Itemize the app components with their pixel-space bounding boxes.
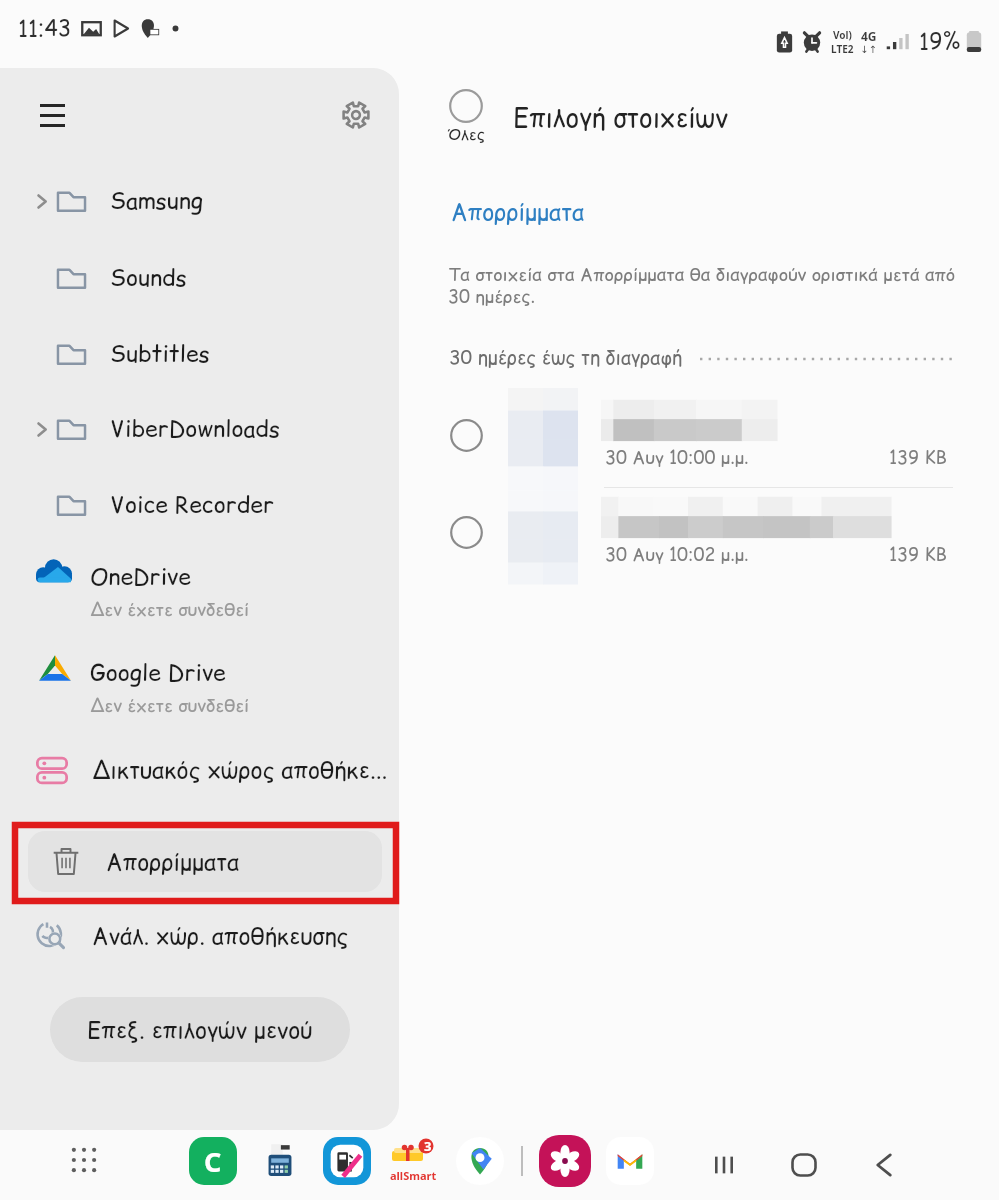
button[interactable]: Επεξ. επιλογών μενού bbox=[50, 997, 350, 1062]
button[interactable]: Maps bbox=[456, 1137, 504, 1185]
staticText: Δικτυακός χώρος αποθήκε... bbox=[92, 754, 388, 786]
staticText: 30 ημέρες έως τη διαγραφή bbox=[449, 344, 683, 371]
button[interactable]: Fuel app bbox=[323, 1137, 371, 1185]
button[interactable]: Home bbox=[778, 1139, 830, 1191]
button[interactable]: Subtitles bbox=[0, 318, 399, 390]
staticText: Απορρίμματα bbox=[451, 196, 585, 228]
button[interactable] bbox=[430, 390, 999, 486]
button[interactable]: OneDrive bbox=[0, 548, 399, 634]
button[interactable]: Απορρίμματα bbox=[28, 831, 382, 892]
staticText: 11:43 bbox=[18, 13, 72, 44]
staticText: Google Drive bbox=[90, 657, 226, 689]
button[interactable]: Δικτυακός χώρος αποθήκε... bbox=[0, 734, 399, 806]
staticText: Τα στοιχεία στα Απορρίμματα θα διαγραφού… bbox=[448, 262, 956, 287]
button[interactable]: Ανάλ. χώρ. αποθήκευσης bbox=[0, 900, 399, 972]
button[interactable]: Google Drive bbox=[0, 644, 399, 730]
staticText: Ανάλ. χώρ. αποθήκευσης bbox=[92, 920, 349, 952]
staticText: Sounds bbox=[110, 262, 187, 294]
button[interactable]: Menu bbox=[27, 90, 77, 140]
staticText: Όλες bbox=[447, 123, 485, 145]
staticText: OneDrive bbox=[90, 561, 191, 593]
staticText: Δεν έχετε συνδεθεί bbox=[90, 597, 250, 622]
staticText: 139 KB bbox=[889, 445, 947, 470]
staticText: allSmart bbox=[390, 1168, 437, 1183]
staticText: Voice Recorder bbox=[110, 489, 274, 521]
button[interactable]: Calculator bbox=[256, 1137, 304, 1185]
button[interactable]: Sounds bbox=[0, 242, 399, 314]
button[interactable] bbox=[430, 487, 999, 583]
staticText: LTE2 bbox=[831, 42, 854, 56]
staticText: Samsung bbox=[110, 185, 203, 217]
staticText: 19% bbox=[919, 26, 961, 57]
staticText: Δεν έχετε συνδεθεί bbox=[90, 693, 250, 718]
button[interactable]: Settings bbox=[331, 90, 381, 140]
button[interactable]: ViberDownloads bbox=[0, 393, 399, 465]
button[interactable]: Back bbox=[858, 1139, 910, 1191]
staticText: Επεξ. επιλογών μενού bbox=[87, 1014, 313, 1046]
staticText: 30 Αυγ 10:02 μ.μ. bbox=[605, 542, 749, 567]
staticText: C bbox=[204, 1143, 222, 1180]
staticText: Επιλογή στοιχείων bbox=[513, 100, 728, 136]
button[interactable]: Samsung bbox=[0, 165, 399, 237]
button[interactable]: Gmail bbox=[606, 1137, 654, 1185]
button[interactable]: Voice Recorder bbox=[0, 469, 399, 541]
button[interactable]: Flower app bbox=[539, 1135, 591, 1187]
staticText: Subtitles bbox=[110, 338, 210, 370]
button[interactable]: Cosmote bbox=[189, 1137, 237, 1185]
staticText: ↓↑ bbox=[860, 44, 877, 56]
staticText: 30 Αυγ 10:00 μ.μ. bbox=[605, 445, 749, 470]
button[interactable]: allSmart bbox=[388, 1135, 440, 1187]
staticText: 3 bbox=[424, 1137, 432, 1155]
button[interactable]: Select all bbox=[438, 85, 494, 149]
staticText: Vol) bbox=[833, 28, 852, 42]
staticText: 139 KB bbox=[889, 542, 947, 567]
button[interactable]: Apps bbox=[62, 1138, 106, 1182]
staticText: 30 ημέρες. bbox=[448, 284, 536, 309]
staticText: ViberDownloads bbox=[110, 413, 281, 445]
button[interactable]: Recents bbox=[698, 1139, 750, 1191]
staticText: Απορρίμματα bbox=[106, 846, 240, 878]
staticText: 4G bbox=[861, 28, 877, 44]
